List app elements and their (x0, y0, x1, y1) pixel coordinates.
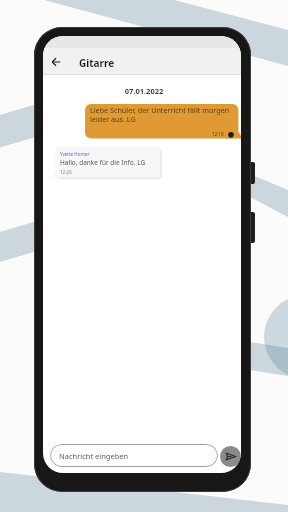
staticText: Gitarre (79, 56, 115, 70)
staticText: 12:20 (60, 169, 72, 175)
staticText: Liebe Schüler, der Unterricht fällt morg… (90, 105, 230, 115)
staticText: 07.01.2022 (45, 86, 241, 96)
staticText: leider aus. LG (90, 114, 136, 124)
staticText: Yvette Horner (60, 151, 90, 157)
staticText: Hallo, danke für die Info. LG (60, 158, 146, 167)
staticText: Nachricht eingeben (59, 451, 129, 461)
staticText: 12:19 (212, 131, 224, 137)
button[interactable]: Nachricht eingeben (50, 444, 218, 467)
button[interactable] (220, 446, 241, 467)
button[interactable] (47, 53, 65, 71)
